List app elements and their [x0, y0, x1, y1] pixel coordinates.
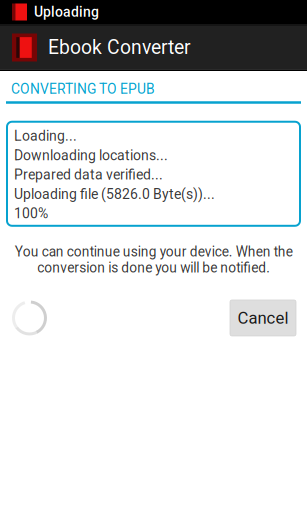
staticText: You can continue using your device. When… — [14, 244, 292, 276]
staticText: Ebook Converter — [48, 36, 191, 59]
staticText: CONVERTING TO EPUB — [11, 81, 155, 97]
staticText: Uploading file (5826.0 Byte(s))... — [14, 186, 215, 202]
staticText: 100% — [14, 205, 48, 222]
staticText: Downloading locations... — [14, 147, 168, 164]
staticText: Uploading — [34, 4, 99, 20]
staticText: Prepared data verified... — [14, 167, 163, 183]
staticText: Cancel — [237, 308, 288, 328]
button[interactable]: Cancel — [230, 300, 296, 336]
staticText: Loading... — [14, 128, 77, 144]
